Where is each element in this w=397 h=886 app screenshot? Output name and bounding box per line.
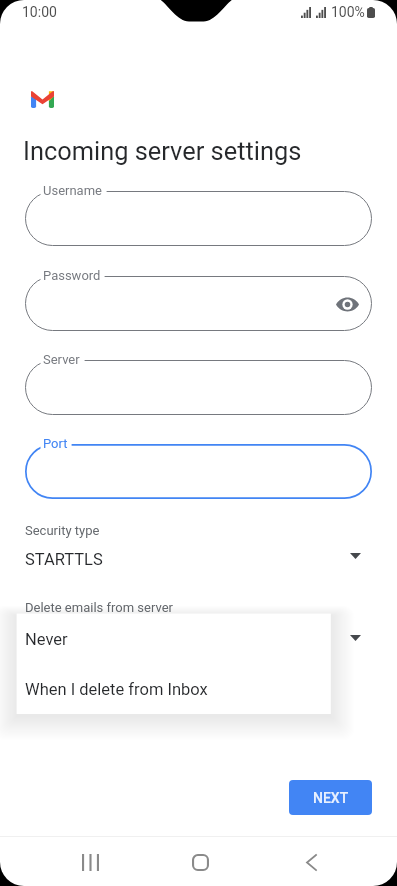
staticText: Port: [43, 436, 68, 451]
staticText: Never: [25, 630, 68, 649]
staticText: Never: [25, 632, 68, 651]
staticText: Incoming server settings: [23, 136, 302, 166]
button[interactable]: When I delete from Inbox: [17, 664, 331, 714]
button[interactable]: STARTTLS: [25, 545, 361, 571]
button[interactable]: Back: [287, 838, 335, 886]
staticText: 100%: [331, 4, 365, 20]
button[interactable]: Port: [25, 444, 372, 499]
button[interactable]: Never: [17, 614, 331, 664]
button[interactable]: Never: [25, 627, 361, 653]
button[interactable]: Server: [25, 360, 372, 415]
button[interactable]: Recents: [66, 838, 114, 886]
staticText: 10:00: [22, 4, 57, 20]
staticText: When I delete from Inbox: [25, 680, 208, 699]
staticText: NEXT: [313, 790, 349, 806]
button[interactable]: NEXT: [289, 780, 372, 815]
button[interactable]: Username: [25, 191, 372, 246]
staticText: Delete emails from server: [25, 600, 173, 615]
staticText: Security type: [25, 523, 100, 538]
staticText: Password: [43, 268, 101, 283]
button[interactable]: Show password: [332, 289, 362, 319]
staticText: STARTTLS: [25, 550, 103, 569]
staticText: Server: [43, 352, 80, 367]
button[interactable]: Password: [25, 276, 372, 331]
staticText: Username: [43, 183, 102, 198]
button[interactable]: Home: [176, 838, 224, 886]
